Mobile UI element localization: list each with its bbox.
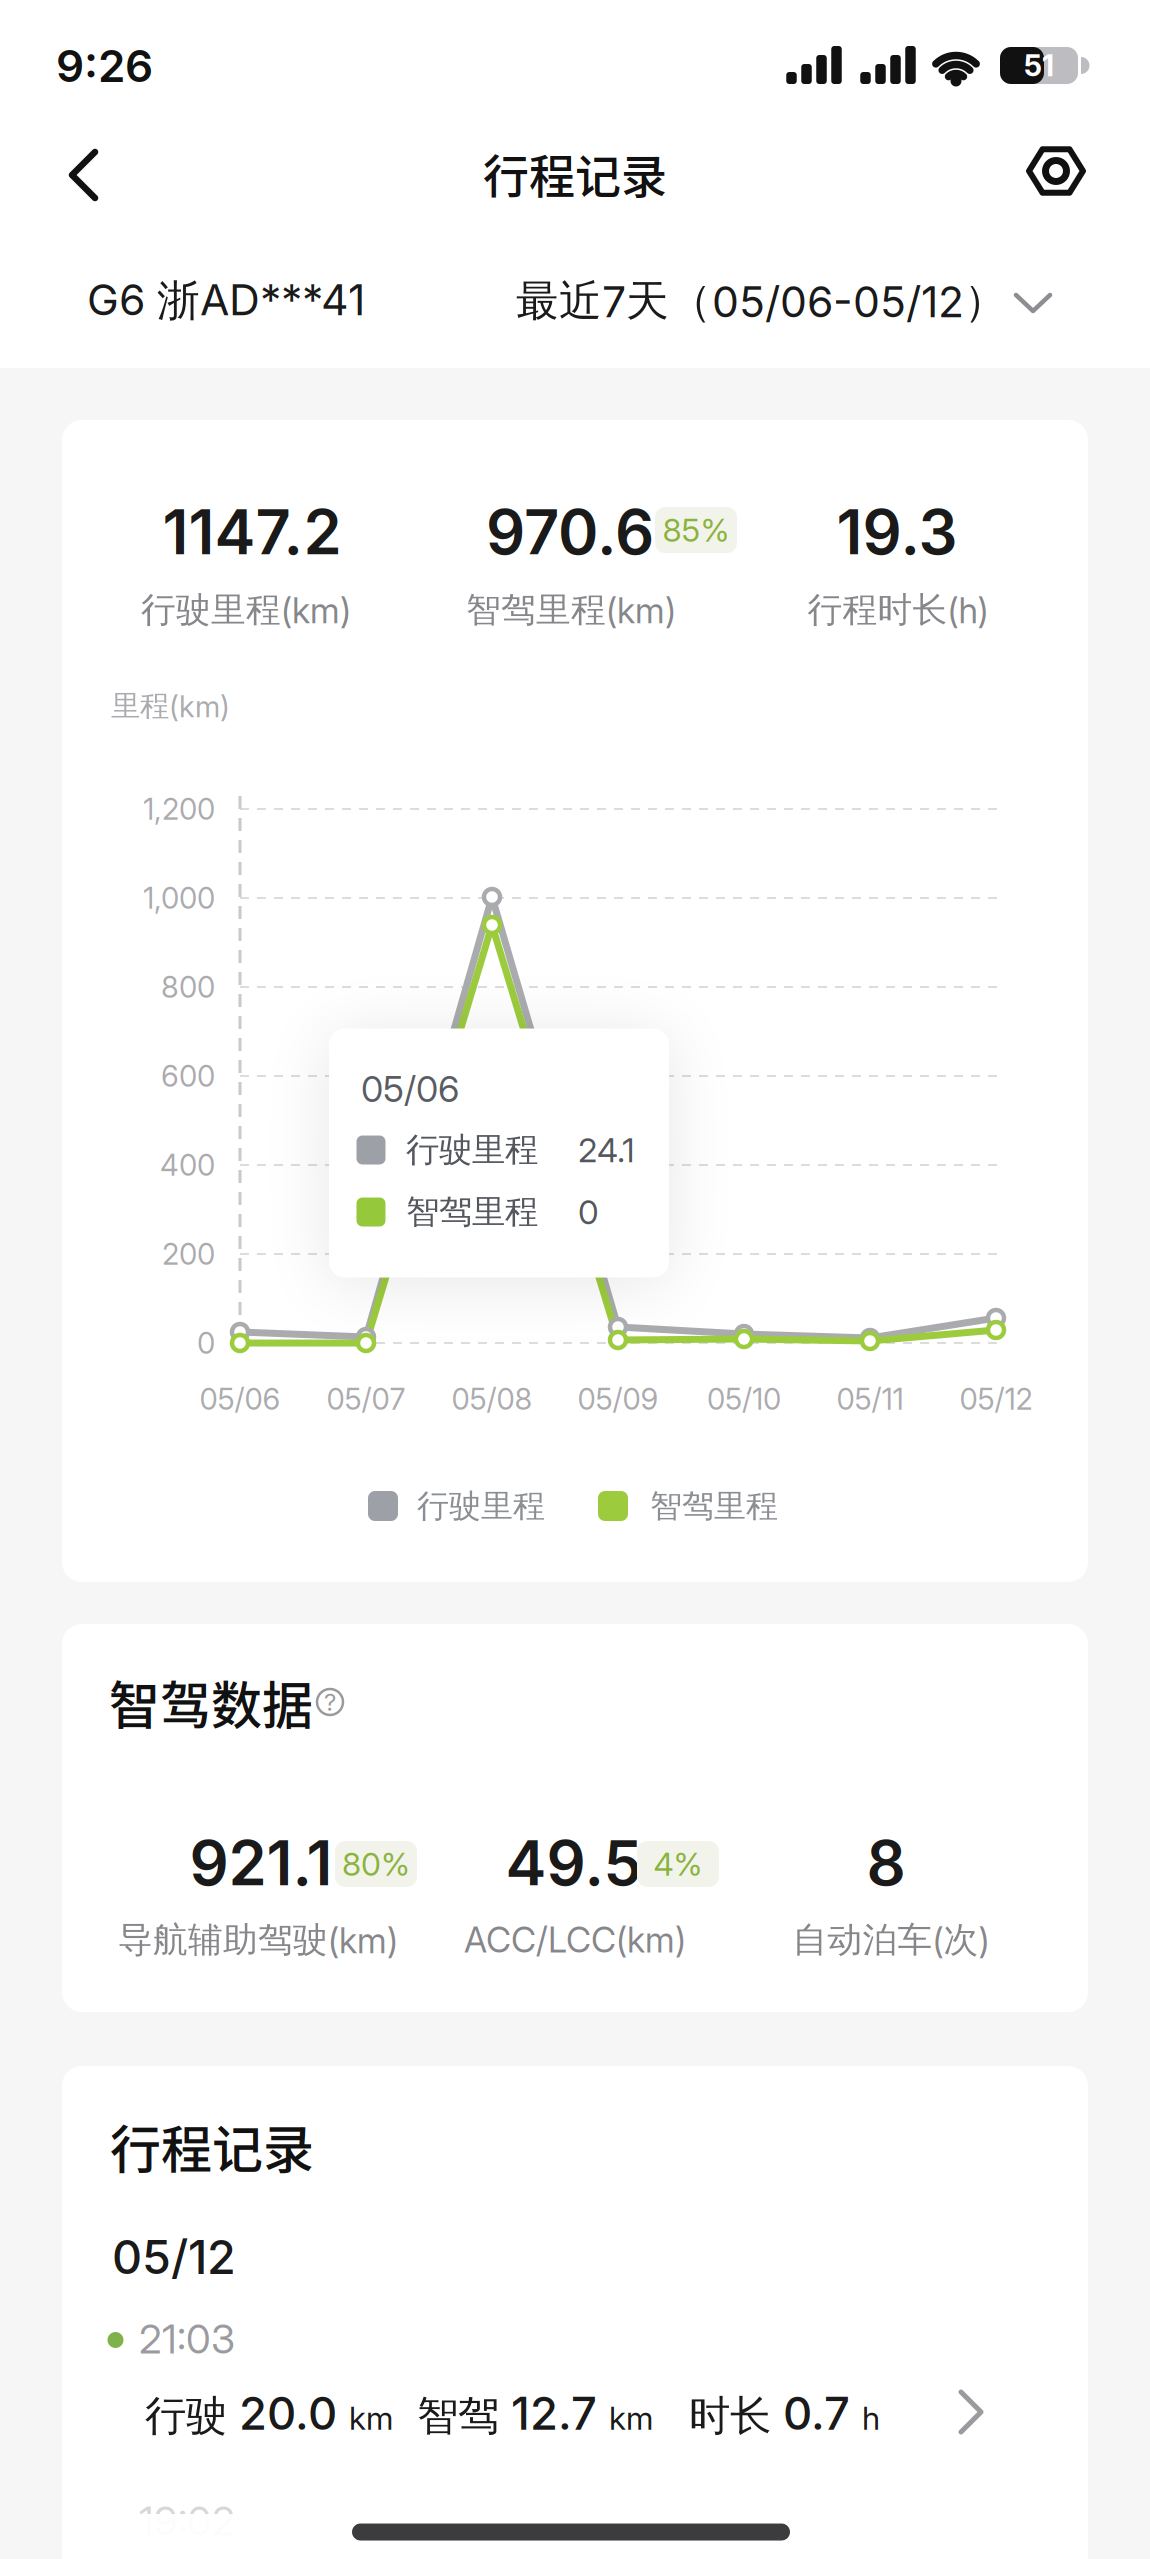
button[interactable] — [1014, 129, 1098, 213]
staticText: 0 — [197, 1326, 215, 1360]
staticText: 24.1 — [578, 1130, 635, 1170]
button[interactable] — [50, 135, 130, 215]
staticText: 4% — [653, 1845, 702, 1883]
staticText: 1,000 — [143, 881, 215, 915]
staticText: 85% — [662, 511, 729, 549]
staticText: 05/12 — [112, 2229, 236, 2285]
staticText: 51 — [1024, 48, 1054, 83]
staticText: 里程(km) — [111, 688, 230, 724]
staticText: 智驾里程(km) — [466, 589, 676, 631]
staticText: 时长 — [653, 2391, 783, 2441]
staticText: 行驶里程(km) — [141, 589, 351, 631]
staticText: 970.6 — [486, 496, 654, 568]
staticText: 800 — [161, 970, 215, 1004]
staticText: 921.1 — [189, 1827, 332, 1899]
staticText: 智驾里程 — [650, 1486, 778, 1526]
staticText: km — [609, 2399, 653, 2437]
staticText: ACC/LCC(km) — [464, 1920, 686, 1960]
staticText: 80% — [342, 1845, 410, 1883]
staticText: 05/10 — [707, 1382, 781, 1416]
staticText: 19:02 — [139, 2497, 235, 2545]
staticText: 最近7天（05/06-05/12） — [516, 275, 1007, 327]
staticText: 智驾 — [393, 2391, 511, 2441]
staticText: 0 — [578, 1192, 599, 1232]
staticText: 行驶里程 — [417, 1486, 545, 1526]
staticText: 05/11 — [836, 1382, 903, 1416]
staticText: 行程时长(h) — [807, 589, 988, 631]
button[interactable]: 最近7天（05/06-05/12） — [516, 263, 1076, 339]
staticText: 自动泊车(次) — [792, 1919, 989, 1961]
staticText: 200 — [162, 1237, 215, 1271]
staticText: 400 — [160, 1148, 215, 1182]
button[interactable]: 行驶 — [62, 2356, 1088, 2468]
staticText: 行驶里程 — [406, 1129, 538, 1170]
staticText: h — [862, 2399, 880, 2437]
staticText: 智驾里程 — [406, 1191, 538, 1232]
button[interactable]: G6 浙AD***41 — [87, 263, 447, 339]
staticText: 05/08 — [451, 1382, 532, 1416]
staticText: 1,200 — [143, 792, 215, 826]
staticText: 19.3 — [836, 496, 957, 568]
staticText: 12.7 — [511, 2387, 609, 2440]
staticText: 21:03 — [139, 2315, 235, 2363]
staticText: 0.7 — [783, 2387, 862, 2440]
staticText: 05/09 — [577, 1382, 658, 1416]
staticText: 行程记录 — [483, 140, 667, 206]
staticText: 1147.2 — [162, 496, 341, 568]
staticText: 20.0 — [239, 2387, 349, 2440]
staticText: 600 — [161, 1059, 215, 1093]
staticText: km — [349, 2399, 393, 2437]
staticText: G6 浙AD***41 — [87, 275, 365, 327]
staticText: 05/07 — [326, 1382, 405, 1416]
staticText: 行程记录 — [110, 2109, 314, 2183]
staticText: 9:26 — [56, 40, 153, 92]
button[interactable]: ? — [306, 1678, 354, 1726]
staticText: 行驶 — [145, 2391, 239, 2441]
staticText: ? — [324, 1688, 336, 1716]
staticText: 智驾数据 — [109, 1665, 313, 1739]
staticText: 05/06 — [361, 1068, 459, 1110]
staticText: 05/12 — [959, 1382, 1032, 1416]
staticText: 8 — [866, 1827, 905, 1899]
staticText: 导航辅助驾驶(km) — [118, 1919, 398, 1961]
staticText: 05/06 — [199, 1382, 280, 1416]
staticText: 49.5 — [505, 1827, 642, 1899]
